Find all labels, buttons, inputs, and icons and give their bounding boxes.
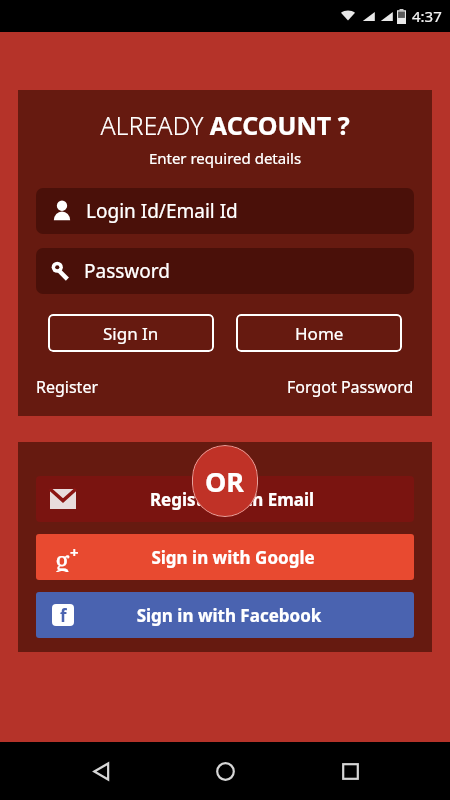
button[interactable]: Home xyxy=(236,314,402,352)
button[interactable]: Forgot Password xyxy=(287,376,414,398)
staticText: 4:37 xyxy=(412,6,442,26)
button[interactable]: Home xyxy=(201,747,249,795)
staticText: Login Id/Email Id xyxy=(86,198,238,224)
staticText: Sign In xyxy=(103,322,159,345)
staticText: Home xyxy=(295,322,344,345)
button[interactable]: g xyxy=(36,534,414,580)
staticText: Sign in with Google xyxy=(82,546,384,569)
staticText: + xyxy=(70,542,79,562)
staticText: Sign in with Facebook xyxy=(74,604,384,627)
staticText: ALREADY ACCOUNT ? xyxy=(36,108,414,142)
staticText: OR xyxy=(205,463,245,500)
staticText: Register with Email xyxy=(76,488,388,511)
staticText: Password xyxy=(84,258,170,284)
button[interactable]: Register with Email xyxy=(36,476,414,522)
staticText: Forgot Password xyxy=(287,376,414,398)
button[interactable]: Login Id/Email Id xyxy=(36,188,414,234)
button[interactable]: Register xyxy=(36,376,99,398)
button[interactable]: Sign In xyxy=(48,314,214,352)
button[interactable]: f xyxy=(36,592,414,638)
staticText: f xyxy=(60,604,67,626)
staticText: Enter required details xyxy=(36,148,414,168)
staticText: g xyxy=(55,542,70,572)
button[interactable]: Password xyxy=(36,248,414,294)
button[interactable]: Back xyxy=(77,747,125,795)
staticText: Register xyxy=(36,376,99,398)
button[interactable]: Recents xyxy=(326,747,374,795)
